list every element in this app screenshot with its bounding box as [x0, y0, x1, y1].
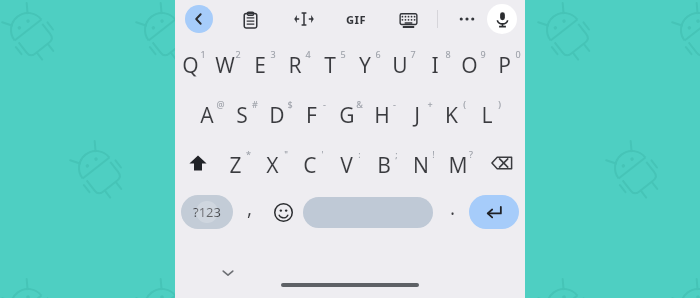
staticText: -	[393, 98, 396, 110]
button[interactable]: G	[332, 88, 367, 138]
button[interactable]: Clipboard	[235, 4, 265, 34]
button[interactable]: Enter	[469, 195, 519, 229]
staticText: J	[414, 101, 420, 130]
button[interactable]: Space	[303, 197, 433, 228]
staticText: GIF	[346, 12, 366, 27]
staticText: R	[288, 51, 302, 80]
staticText: K	[445, 101, 458, 130]
button[interactable]: T	[315, 38, 350, 88]
button[interactable]: J	[402, 88, 437, 138]
button[interactable]: Comma	[233, 188, 267, 236]
staticText: #	[252, 98, 258, 110]
staticText: 1	[200, 48, 206, 60]
button[interactable]: X	[257, 138, 294, 188]
staticText: B	[377, 151, 391, 180]
button[interactable]: Shift	[175, 138, 220, 188]
staticText: 4	[305, 48, 311, 60]
button[interactable]: O	[455, 38, 490, 88]
staticText: 7	[410, 48, 416, 60]
button[interactable]: R	[280, 38, 315, 88]
staticText: U	[392, 51, 408, 80]
staticText: Y	[359, 51, 371, 80]
button[interactable]: U	[385, 38, 420, 88]
button[interactable]: F	[297, 88, 332, 138]
staticText: ?123	[193, 203, 221, 221]
staticText: ?	[469, 148, 473, 160]
staticText: Z	[229, 151, 242, 180]
button[interactable]: N	[405, 138, 442, 188]
staticText: M	[448, 151, 468, 180]
staticText: 6	[375, 48, 381, 60]
button[interactable]: ?123	[181, 195, 233, 229]
staticText: E	[254, 51, 266, 80]
staticText: H	[374, 101, 390, 130]
staticText: D	[269, 101, 285, 130]
staticText: 8	[445, 48, 451, 60]
button[interactable]: More options	[452, 4, 482, 34]
button[interactable]: A	[193, 88, 227, 138]
button[interactable]: GIF	[341, 4, 371, 34]
button[interactable]: Backspace	[479, 138, 525, 188]
button[interactable]: B	[368, 138, 405, 188]
staticText: .	[450, 195, 456, 221]
staticText: )	[498, 98, 501, 110]
button[interactable]: Voice input	[487, 4, 517, 34]
staticText: 2	[235, 48, 241, 60]
button[interactable]: P	[490, 38, 525, 88]
button[interactable]: E	[245, 38, 280, 88]
button[interactable]: Back	[185, 5, 213, 33]
button[interactable]: D	[262, 88, 297, 138]
button[interactable]: Hide keyboard	[215, 260, 241, 286]
button[interactable]: K	[437, 88, 472, 138]
staticText: Q	[182, 51, 199, 80]
staticText: V	[340, 151, 353, 180]
staticText: :	[358, 148, 361, 160]
staticText: 9	[480, 48, 486, 60]
staticText: (	[463, 98, 466, 110]
button[interactable]: S	[227, 88, 262, 138]
button[interactable]: V	[331, 138, 368, 188]
button[interactable]: L	[472, 88, 507, 138]
staticText: &	[356, 98, 363, 110]
staticText: 3	[270, 48, 276, 60]
button[interactable]: I	[420, 38, 455, 88]
button[interactable]: Text editing	[289, 4, 319, 34]
staticText: P	[498, 51, 511, 80]
button[interactable]: Q	[176, 38, 210, 88]
button[interactable]: W	[210, 38, 245, 88]
staticText: W	[215, 51, 235, 80]
staticText: T	[324, 51, 336, 80]
staticText: *	[246, 148, 251, 160]
staticText: -	[323, 98, 326, 110]
button[interactable]: M	[442, 138, 479, 188]
staticText: N	[413, 151, 429, 180]
button[interactable]: Z	[220, 138, 257, 188]
staticText: 0	[515, 48, 521, 60]
staticText: G	[339, 101, 355, 130]
staticText: I	[431, 51, 439, 80]
staticText: O	[461, 51, 478, 80]
staticText: A	[200, 101, 214, 130]
button[interactable]: Period	[437, 188, 469, 236]
staticText: L	[481, 101, 493, 130]
staticText: S	[236, 101, 248, 130]
button[interactable]: H	[367, 88, 402, 138]
button[interactable]: C	[294, 138, 331, 188]
staticText: !	[432, 148, 435, 160]
button[interactable]: Y	[350, 38, 385, 88]
button[interactable]: Emoji	[267, 188, 299, 236]
staticText: F	[306, 101, 317, 130]
staticText: ,	[247, 195, 253, 221]
staticText: X	[266, 151, 279, 180]
staticText: 5	[340, 48, 346, 60]
staticText: '	[321, 148, 324, 160]
staticText: C	[303, 151, 317, 180]
staticText: ;	[395, 148, 398, 160]
staticText: @	[216, 98, 225, 110]
staticText: $	[287, 98, 293, 110]
staticText: "	[284, 148, 288, 160]
button[interactable]: Keyboard settings	[393, 4, 423, 34]
staticText: +	[427, 98, 433, 110]
